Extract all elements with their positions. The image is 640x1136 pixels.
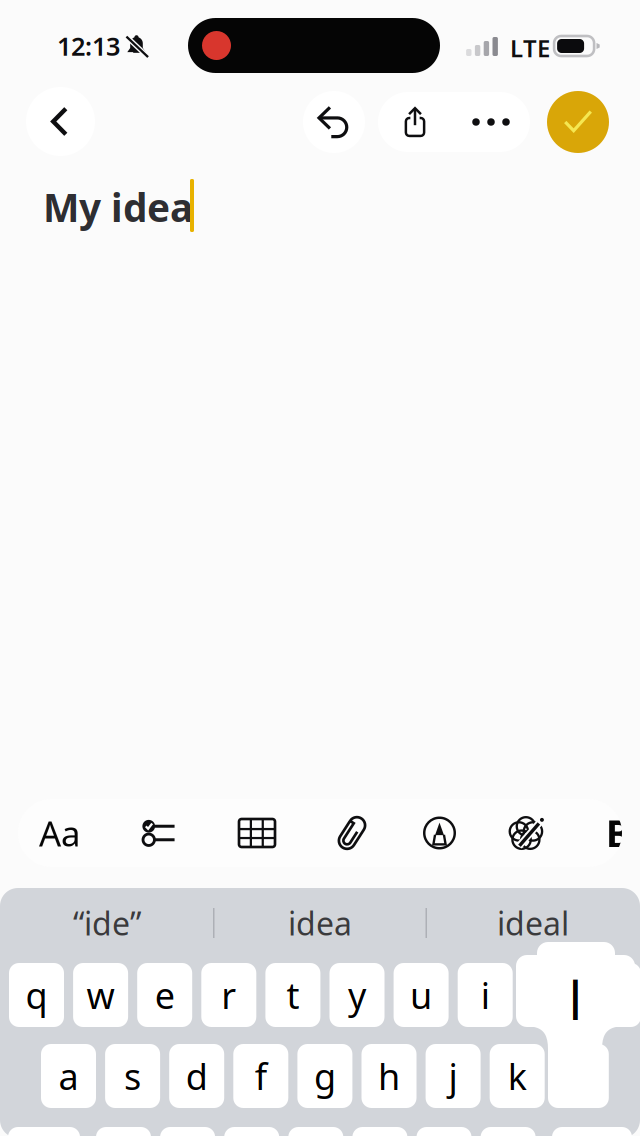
staticText: w: [87, 971, 115, 1019]
staticText: k: [508, 1052, 527, 1100]
button[interactable]: r: [201, 963, 256, 1027]
button[interactable]: w: [73, 963, 128, 1027]
button[interactable]: Done: [547, 91, 609, 153]
button[interactable]: Bold: [606, 799, 626, 867]
staticText: f: [255, 1052, 267, 1100]
button[interactable]: Markup: [399, 799, 479, 867]
button[interactable]: ideal: [427, 898, 639, 948]
staticText: e: [155, 971, 175, 1019]
staticText: y: [348, 971, 366, 1019]
button[interactable]: y: [329, 963, 384, 1027]
staticText: i: [481, 971, 490, 1019]
staticText: j: [449, 1052, 458, 1100]
button[interactable]: Undo: [303, 91, 365, 153]
button[interactable]: d: [169, 1044, 224, 1108]
button[interactable]: v: [288, 1127, 343, 1136]
button[interactable]: [8, 1127, 80, 1136]
button[interactable]: u: [394, 963, 449, 1027]
button[interactable]: e: [137, 963, 192, 1027]
button[interactable]: x: [160, 1127, 215, 1136]
staticText: Aa: [39, 810, 80, 856]
button[interactable]: Checklist: [118, 799, 198, 867]
button[interactable]: Text format: [19, 799, 99, 867]
button[interactable]: b: [352, 1127, 407, 1136]
staticText: idea: [288, 902, 352, 944]
staticText: l: [568, 964, 582, 1035]
button[interactable]: a: [41, 1044, 96, 1108]
button[interactable]: m: [481, 1127, 536, 1136]
staticText: B: [606, 808, 631, 858]
staticText: u: [410, 971, 432, 1019]
button[interactable]: c: [224, 1127, 279, 1136]
staticText: t: [286, 971, 299, 1019]
button[interactable]: l: [554, 1044, 609, 1108]
staticText: q: [25, 971, 47, 1019]
staticText: s: [124, 1052, 141, 1100]
staticText: LTE: [510, 32, 550, 64]
staticText: r: [221, 971, 236, 1019]
staticText: h: [378, 1052, 400, 1100]
button[interactable]: o: [522, 963, 577, 1027]
button[interactable]: Share: [378, 92, 452, 152]
button[interactable]: i: [458, 963, 513, 1027]
button[interactable]: p: [586, 963, 640, 1027]
button[interactable]: h: [361, 1044, 416, 1108]
staticText: 12:13: [57, 29, 120, 63]
staticText: a: [58, 1052, 78, 1100]
button[interactable]: Smart actions: [487, 799, 567, 867]
button[interactable]: t: [265, 963, 320, 1027]
staticText: ideal: [497, 902, 569, 944]
button[interactable]: n: [416, 1127, 471, 1136]
staticText: “ide”: [73, 902, 141, 944]
button[interactable]: f: [233, 1044, 288, 1108]
button[interactable]: q: [9, 963, 64, 1027]
button[interactable]: z: [96, 1127, 151, 1136]
button[interactable]: Back: [26, 87, 95, 156]
button[interactable]: More options: [452, 92, 530, 152]
staticText: My idea: [43, 181, 193, 233]
button[interactable]: [552, 1127, 632, 1136]
button[interactable]: Table: [217, 799, 297, 867]
staticText: d: [186, 1052, 208, 1100]
button[interactable]: k: [490, 1044, 545, 1108]
button[interactable]: “ide”: [1, 898, 213, 948]
button[interactable]: g: [297, 1044, 352, 1108]
button[interactable]: idea: [214, 898, 425, 948]
staticText: g: [314, 1052, 336, 1100]
button[interactable]: Attach file: [312, 799, 392, 867]
button[interactable]: s: [105, 1044, 160, 1108]
button[interactable]: j: [426, 1044, 481, 1108]
